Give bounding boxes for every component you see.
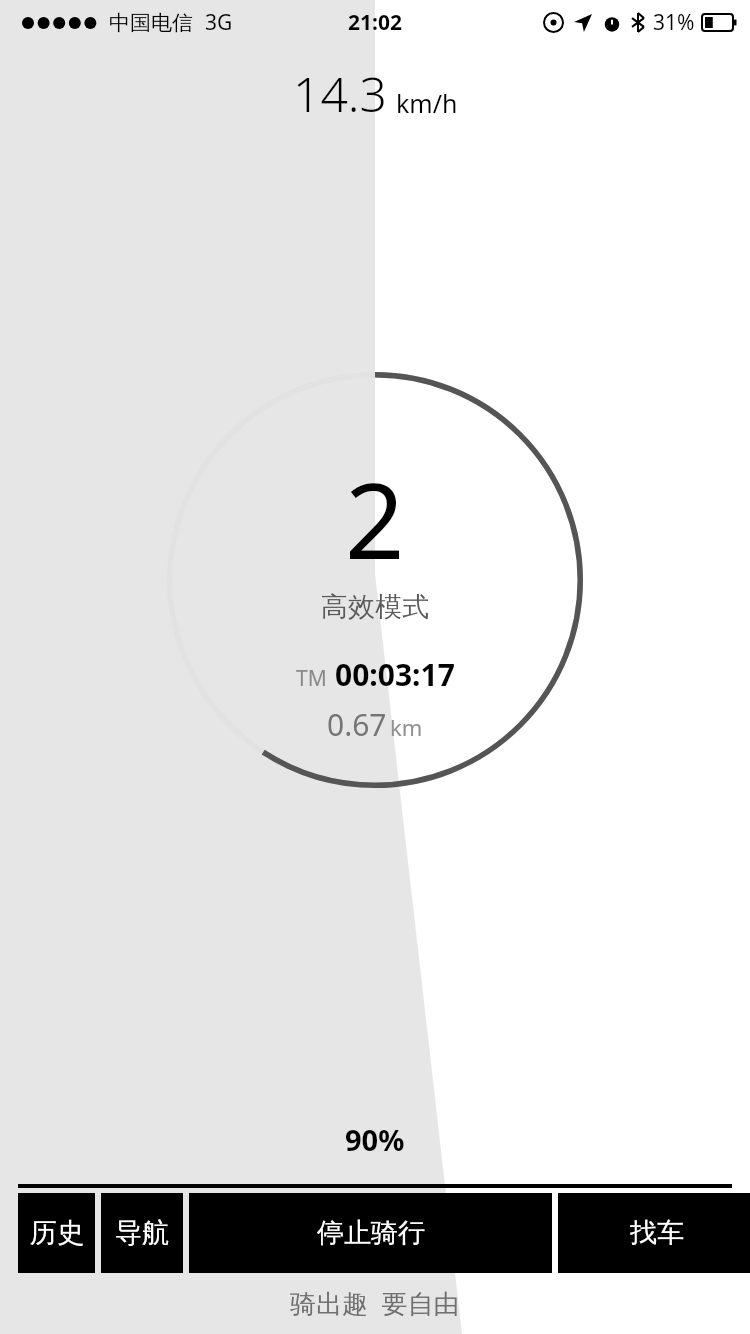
staticText: 21:02 (348, 8, 402, 37)
button[interactable]: 停止骑行 (189, 1193, 552, 1273)
staticText: 骑出趣 要自由 (290, 1285, 460, 1321)
staticText: 90% (345, 1120, 405, 1159)
button[interactable]: 导航 (101, 1193, 183, 1273)
staticText: 00:03:17 (335, 654, 455, 695)
staticText: km/h (396, 86, 458, 120)
staticText: 0.67 (327, 704, 387, 745)
button[interactable]: 历史 (18, 1193, 95, 1273)
staticText: 3G (205, 8, 233, 37)
staticText: 导航 (115, 1216, 169, 1250)
staticText: 历史 (30, 1216, 84, 1250)
staticText: 2 (345, 448, 405, 590)
staticText: 停止骑行 (317, 1216, 425, 1250)
staticText: 31% (653, 8, 695, 37)
staticText: TM (296, 664, 327, 693)
staticText: 找车 (630, 1216, 684, 1250)
staticText: 中国电信 (109, 10, 193, 36)
button[interactable]: 找车 (558, 1193, 750, 1273)
staticText: 14.3 (293, 61, 387, 126)
staticText: km (390, 712, 423, 742)
staticText: 高效模式 (321, 590, 429, 624)
